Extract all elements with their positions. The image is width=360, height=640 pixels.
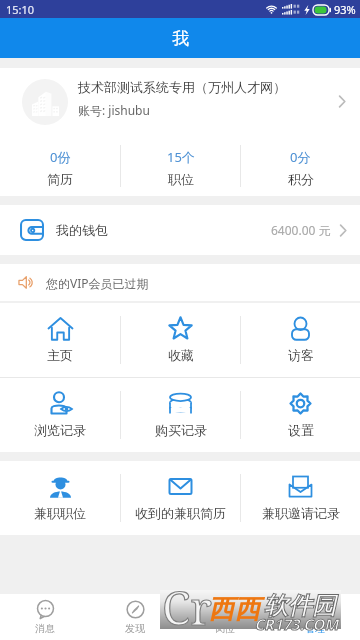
staticText: 主页 [47,347,73,363]
button[interactable]: 设置 [241,378,360,452]
button[interactable]: 兼职职位 [0,461,120,535]
button[interactable]: 发现 [90,594,180,640]
button[interactable]: 管理 [270,594,360,640]
staticText: 我的钱包 [56,222,108,238]
staticText: 购买记录 [155,422,207,438]
button[interactable]: 岗位 [180,594,270,640]
staticText: 访客 [288,347,314,363]
staticText: 15:10 [6,2,35,17]
staticText: 6400.00 元 [271,222,331,238]
staticText: 收到的兼职简历 [135,505,226,521]
staticText: 简历 [47,171,73,187]
staticText: 15个 [167,148,195,166]
staticText: 设置 [288,422,314,438]
staticText: 积分 [288,171,314,187]
button[interactable]: 技术部测试系统专用（万州人才网） [0,68,360,135]
staticText: 0份 [50,148,71,166]
staticText: 账号: jishubu [78,102,150,118]
staticText: 浏览记录 [34,422,86,438]
staticText: 技术部测试系统专用（万州人才网） [78,79,286,95]
button[interactable]: 收藏 [121,303,240,377]
button[interactable]: 我的钱包 [0,205,360,255]
button[interactable]: 0分 [241,135,360,196]
staticText: 发现 [125,622,145,635]
button[interactable]: 兼职邀请记录 [241,461,360,535]
button[interactable]: 购买记录 [121,378,240,452]
staticText: 管理 [305,622,325,635]
staticText: 兼职邀请记录 [262,505,340,521]
staticText: 职位 [168,171,194,187]
button[interactable]: 您的VIP会员已过期 [0,264,360,301]
staticText: 0分 [290,148,311,166]
button[interactable]: 访客 [241,303,360,377]
staticText: 您的VIP会员已过期 [46,275,149,291]
staticText: 岗位 [215,622,235,635]
staticText: 兼职职位 [34,505,86,521]
staticText: 消息 [35,622,55,635]
button[interactable]: 消息 [0,594,90,640]
staticText: 收藏 [168,347,194,363]
button[interactable]: 收到的兼职简历 [121,461,240,535]
button[interactable]: 15个 [121,135,240,196]
staticText: 我 [172,28,189,49]
button[interactable]: 浏览记录 [0,378,120,452]
button[interactable]: 0份 [0,135,120,196]
staticText: 93% [334,2,356,17]
button[interactable]: 主页 [0,303,120,377]
